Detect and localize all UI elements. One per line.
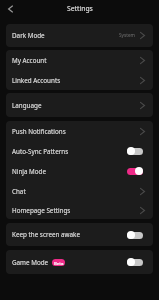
staticText: Dark Mode <box>12 31 45 40</box>
button[interactable]: Auto-Sync Patterns <box>6 141 153 161</box>
staticText: Keep the screen awake <box>12 230 80 239</box>
staticText: Beta <box>54 260 64 266</box>
button[interactable]: Keep the screen awake <box>6 223 153 246</box>
button[interactable]: Linked Accounts <box>6 70 153 90</box>
staticText: Settings <box>67 4 93 13</box>
staticText: Chat <box>12 187 26 196</box>
button[interactable]: Homepage Settings <box>6 201 153 219</box>
staticText: Push Notifications <box>12 127 66 136</box>
staticText: Game Mode <box>12 258 49 267</box>
button[interactable]: Toggle on <box>127 167 143 175</box>
staticText: Homepage Settings <box>12 206 71 215</box>
button[interactable]: Dark Mode <box>6 24 153 46</box>
staticText: My Account <box>12 56 47 65</box>
button[interactable]: Ninja Mode <box>6 161 153 181</box>
button[interactable]: My Account <box>6 50 153 70</box>
staticText: Linked Accounts <box>12 76 61 85</box>
staticText: Auto-Sync Patterns <box>12 147 69 156</box>
button[interactable]: Toggle off <box>127 231 143 239</box>
button[interactable]: Language <box>6 93 153 117</box>
button[interactable]: Back <box>4 2 17 15</box>
button[interactable]: Push Notifications <box>6 121 153 141</box>
staticText: Language <box>12 101 42 110</box>
button[interactable]: Toggle off <box>127 258 143 266</box>
button[interactable]: Game Mode <box>6 250 153 274</box>
button[interactable]: Chat <box>6 181 153 201</box>
button[interactable]: Toggle off <box>127 147 143 155</box>
staticText: System <box>119 32 135 38</box>
staticText: Ninja Mode <box>12 167 47 176</box>
